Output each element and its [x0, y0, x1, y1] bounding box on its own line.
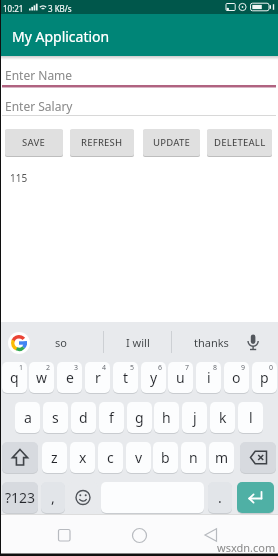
staticText: t [123, 368, 129, 387]
button[interactable]: ?123 [2, 482, 38, 513]
staticText: o [232, 368, 241, 387]
staticText: wsxdn.com [217, 540, 276, 555]
staticText: . [218, 488, 222, 507]
staticText: e [66, 368, 74, 387]
button[interactable] [68, 482, 98, 513]
staticText: 115 [10, 171, 28, 185]
button[interactable] [2, 442, 38, 473]
button[interactable]: w [29, 362, 54, 393]
button[interactable]: DELETEALL [207, 129, 272, 156]
staticText: d [79, 408, 88, 427]
staticText: UPDATE [153, 136, 190, 149]
button[interactable]: x [70, 442, 95, 473]
staticText: 3 KB/s [48, 3, 72, 14]
staticText: r [95, 368, 101, 387]
button[interactable]: . [208, 482, 232, 513]
button[interactable] [8, 332, 30, 354]
staticText: a [24, 408, 32, 427]
button[interactable] [44, 520, 86, 552]
button[interactable]: d [71, 402, 96, 433]
staticText: g [135, 408, 144, 427]
button[interactable] [0, 14, 278, 56]
button[interactable]: s [43, 402, 68, 433]
staticText: Enter Name [5, 67, 73, 83]
button[interactable]: , [41, 482, 65, 513]
button[interactable] [119, 520, 161, 552]
staticText: REFRESH [81, 136, 123, 149]
button[interactable]: o [224, 362, 249, 393]
staticText: l [249, 408, 253, 427]
staticText: k [219, 408, 227, 427]
button[interactable]: c [98, 442, 123, 473]
staticText: s [52, 408, 59, 427]
staticText: 7 [185, 363, 190, 373]
staticText: h [162, 408, 171, 427]
button[interactable]: u [168, 362, 193, 393]
button[interactable]: Enter Name [2, 60, 276, 87]
staticText: y [150, 368, 158, 387]
button[interactable]: f [99, 402, 124, 433]
button[interactable]: p [252, 362, 277, 393]
staticText: SAVE [22, 136, 46, 149]
button[interactable]: g [127, 402, 152, 433]
staticText: w [36, 368, 48, 387]
button[interactable] [240, 442, 276, 473]
button[interactable]: m [209, 442, 234, 473]
button[interactable]: SAVE [5, 129, 63, 156]
button[interactable]: q [2, 362, 27, 393]
staticText: c [107, 448, 114, 467]
button[interactable]: h [154, 402, 179, 433]
staticText: p [260, 368, 269, 387]
staticText: m [215, 448, 229, 467]
button[interactable]: Enter Salary [2, 93, 276, 116]
staticText: 2 [46, 363, 51, 373]
staticText: My Application [12, 27, 110, 46]
staticText: I will [126, 335, 150, 350]
staticText: 10:21 [3, 3, 24, 14]
button[interactable]: n [181, 442, 206, 473]
staticText: q [10, 368, 19, 387]
staticText: z [51, 448, 58, 467]
button[interactable]: l [238, 402, 263, 433]
button[interactable]: e [57, 362, 82, 393]
button[interactable]: k [210, 402, 235, 433]
staticText: 3 [74, 363, 79, 373]
button[interactable]: UPDATE [143, 129, 200, 156]
button[interactable]: y [141, 362, 166, 393]
staticText: x [79, 448, 87, 467]
button[interactable]: v [126, 442, 151, 473]
staticText: 1 [19, 363, 24, 373]
button[interactable]: I will [104, 326, 171, 358]
staticText: DELETEALL [214, 136, 266, 149]
button[interactable]: thanks [178, 326, 244, 358]
staticText: b [161, 448, 170, 467]
button[interactable]: z [42, 442, 67, 473]
button[interactable]: i [196, 362, 221, 393]
staticText: 9 [241, 363, 246, 373]
button[interactable]: b [153, 442, 178, 473]
button[interactable] [237, 482, 274, 513]
staticText: n [189, 448, 198, 467]
staticText: u [176, 368, 185, 387]
staticText: thanks [194, 335, 229, 350]
button[interactable]: REFRESH [70, 129, 134, 156]
button[interactable]: so [34, 326, 88, 358]
button[interactable]: j [182, 402, 207, 433]
button[interactable] [242, 328, 270, 356]
staticText: Enter Salary [5, 98, 73, 114]
staticText: j [193, 408, 197, 427]
staticText: 4 [102, 363, 107, 373]
button[interactable]: r [85, 362, 110, 393]
staticText: , [51, 488, 55, 507]
staticText: ?123 [5, 488, 36, 507]
button[interactable]: t [113, 362, 138, 393]
staticText: i [207, 368, 211, 387]
staticText: 5 [130, 363, 135, 373]
staticText: 8 [213, 363, 218, 373]
button[interactable]: a [15, 402, 40, 433]
staticText: v [135, 448, 143, 467]
staticText: 6 [158, 363, 163, 373]
staticText: 0 [269, 363, 274, 373]
button[interactable] [195, 520, 237, 552]
